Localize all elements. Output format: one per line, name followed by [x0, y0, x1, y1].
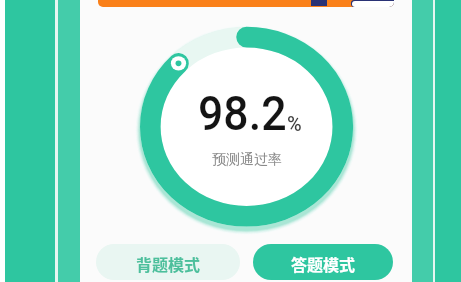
- staticText: 背题模式: [136, 252, 201, 275]
- staticText: 98.2: [198, 86, 287, 142]
- staticText: 预测通过率: [212, 151, 282, 169]
- staticText: 答题模式: [291, 252, 356, 275]
- button[interactable]: 背题模式: [96, 244, 240, 280]
- button[interactable]: 答题模式: [253, 244, 393, 280]
- button[interactable]: [98, 0, 394, 7]
- staticText: %: [287, 112, 302, 135]
